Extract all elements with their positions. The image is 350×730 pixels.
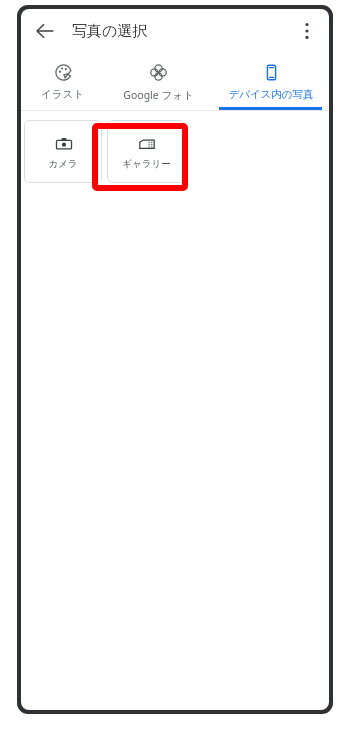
- staticText: デバイス内の写真: [228, 88, 314, 101]
- button[interactable]: ギャラリー: [107, 120, 185, 183]
- button[interactable]: 戻る: [26, 12, 64, 50]
- button[interactable]: デバイス内の写真: [212, 53, 329, 110]
- button[interactable]: Google フォト: [104, 53, 212, 110]
- button[interactable]: カメラ: [24, 120, 102, 183]
- staticText: 写真の選択: [72, 22, 148, 41]
- staticText: Google フォト: [123, 88, 194, 102]
- staticText: イラスト: [41, 88, 84, 101]
- staticText: ギャラリー: [122, 158, 171, 170]
- button[interactable]: イラスト: [21, 53, 104, 110]
- button[interactable]: その他のオプション: [288, 12, 326, 50]
- staticText: カメラ: [48, 158, 78, 170]
